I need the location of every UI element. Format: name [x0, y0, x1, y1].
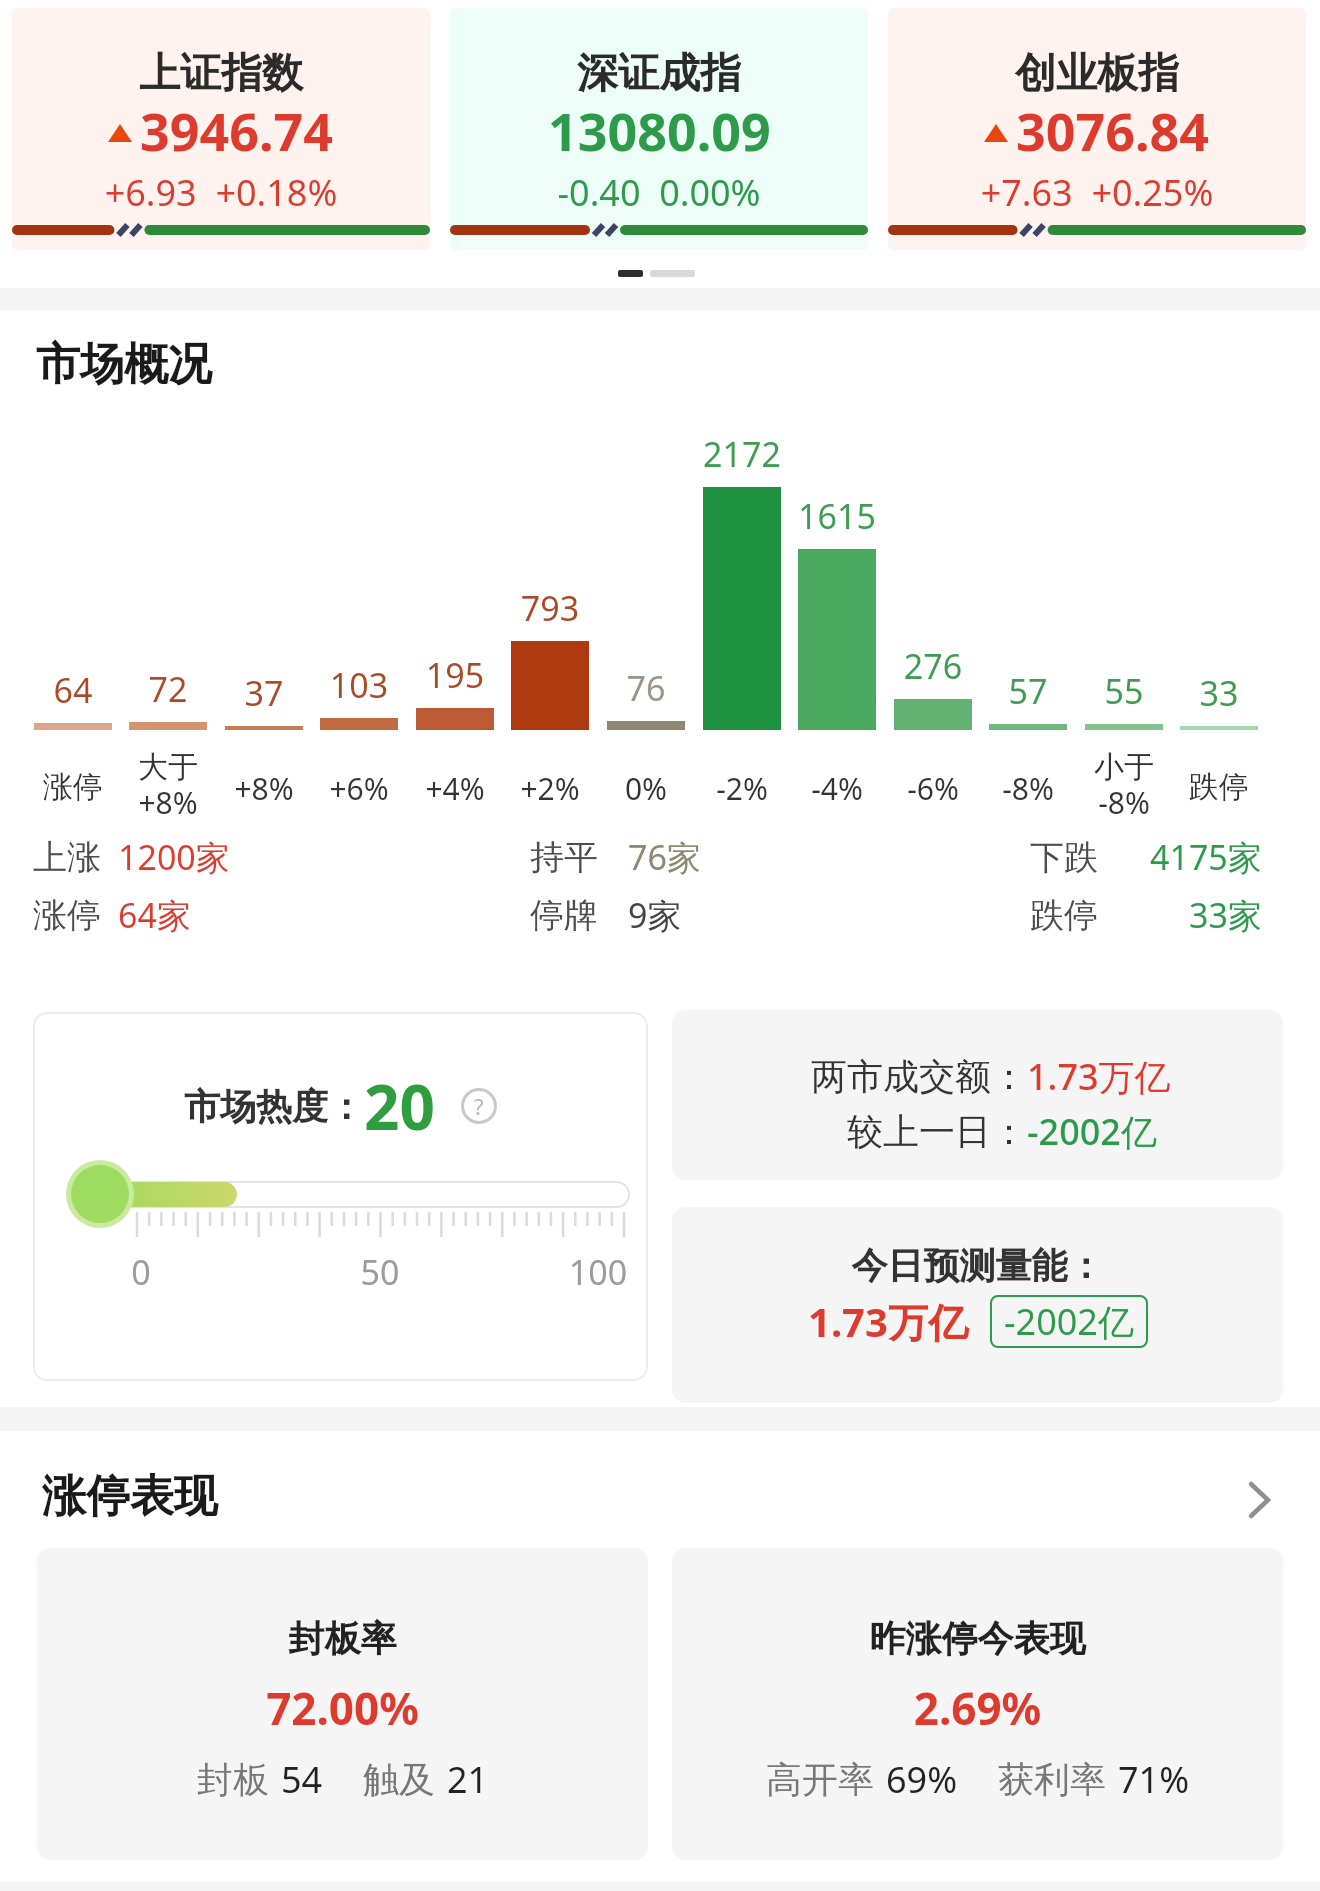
staticText: 市场热度：: [184, 1084, 364, 1129]
staticText: 13080.09: [548, 95, 771, 166]
staticText: 深证成指: [450, 48, 868, 100]
button[interactable]: 上证指数: [12, 8, 430, 250]
staticText: 103: [289, 662, 429, 708]
staticText: 37: [194, 670, 334, 716]
staticText: 76家: [628, 834, 701, 880]
staticText: 较上一日：: [847, 1109, 1027, 1154]
staticText: 大于 +8%: [98, 748, 238, 823]
staticText: 上证指数: [12, 48, 430, 100]
button[interactable]: [650, 270, 695, 277]
staticText: 3946.74: [140, 95, 334, 166]
staticText: 54: [281, 1755, 323, 1804]
staticText: 获利率: [998, 1757, 1106, 1802]
staticText: 高开率: [766, 1757, 874, 1802]
staticText: 下跌: [1030, 836, 1098, 879]
staticText: 创业板指: [888, 48, 1306, 100]
staticText: 3076.84: [1016, 95, 1210, 166]
button[interactable]: 市场热度：: [33, 1012, 648, 1381]
staticText: 4175家: [1150, 834, 1262, 880]
staticText: 195: [385, 652, 525, 698]
staticText: 2.69%: [672, 1678, 1283, 1738]
staticText: 停牌: [530, 894, 598, 937]
staticText: 两市成交额：: [811, 1054, 1027, 1099]
staticText: +8%: [194, 768, 334, 809]
staticText: -2%: [672, 768, 812, 809]
staticText: 72.00%: [37, 1678, 648, 1738]
button[interactable]: [618, 270, 643, 277]
staticText: 276: [863, 643, 1003, 689]
staticText: 涨停: [33, 894, 101, 937]
button[interactable]: 深证成指: [450, 8, 868, 250]
staticText: -2002亿: [1004, 1297, 1134, 1346]
staticText: 20: [364, 1064, 435, 1148]
staticText: 1615: [767, 493, 907, 539]
button[interactable]: 封板率: [37, 1548, 648, 1860]
button[interactable]: 创业板指: [888, 8, 1306, 250]
button[interactable]: 昨涨停今表现: [672, 1548, 1283, 1860]
staticText: +2%: [480, 768, 620, 809]
staticText: 持平: [530, 836, 598, 879]
staticText: 跌停: [1030, 894, 1098, 937]
staticText: 封板率: [37, 1616, 648, 1661]
staticText: -2002亿: [1027, 1107, 1157, 1156]
staticText: 市场概况: [36, 337, 212, 392]
staticText: 触及: [363, 1757, 435, 1802]
staticText: 100: [558, 1249, 638, 1295]
staticText: 上涨: [33, 836, 101, 879]
staticText: 封板: [197, 1757, 269, 1802]
staticText: -6%: [863, 768, 1003, 809]
staticText: 793: [480, 585, 620, 631]
staticText: 小于 -8%: [1054, 748, 1194, 823]
staticText: 76: [576, 665, 716, 711]
staticText: 跌停: [1149, 768, 1289, 806]
staticText: 50: [340, 1249, 420, 1295]
staticText: +6.93 +0.18%: [12, 168, 430, 217]
staticText: 1.73万亿: [808, 1294, 968, 1349]
staticText: 0%: [576, 768, 716, 809]
staticText: 33家: [1189, 892, 1262, 938]
staticText: 涨停: [3, 768, 143, 806]
staticText: 2172: [672, 431, 812, 477]
staticText: -4%: [767, 768, 907, 809]
staticText: +7.63 +0.25%: [888, 168, 1306, 217]
staticText: 1200家: [118, 834, 230, 880]
staticText: 1.73万亿: [1027, 1052, 1171, 1101]
staticText: 71%: [1118, 1755, 1190, 1804]
staticText: 9家: [628, 892, 682, 938]
button[interactable]: 今日预测量能：: [672, 1207, 1283, 1403]
button[interactable]: 两市成交额：: [672, 1010, 1283, 1180]
staticText: -0.40 0.00%: [450, 168, 868, 217]
staticText: 0: [101, 1249, 181, 1295]
staticText: 72: [98, 666, 238, 712]
staticText: 57: [958, 668, 1098, 714]
button[interactable]: 涨停表现: [0, 1456, 1320, 1536]
staticText: 64家: [118, 892, 191, 938]
staticText: 69%: [886, 1755, 958, 1804]
staticText: ?: [474, 1091, 484, 1121]
staticText: 昨涨停今表现: [672, 1616, 1283, 1661]
staticText: 涨停表现: [42, 1469, 218, 1524]
staticText: -8%: [958, 768, 1098, 809]
staticText: 21: [447, 1755, 489, 1804]
staticText: 今日预测量能：: [672, 1243, 1283, 1288]
staticText: 55: [1054, 668, 1194, 714]
staticText: +6%: [289, 768, 429, 809]
staticText: 64: [3, 667, 143, 713]
staticText: +4%: [385, 768, 525, 809]
staticText: 33: [1149, 670, 1289, 716]
